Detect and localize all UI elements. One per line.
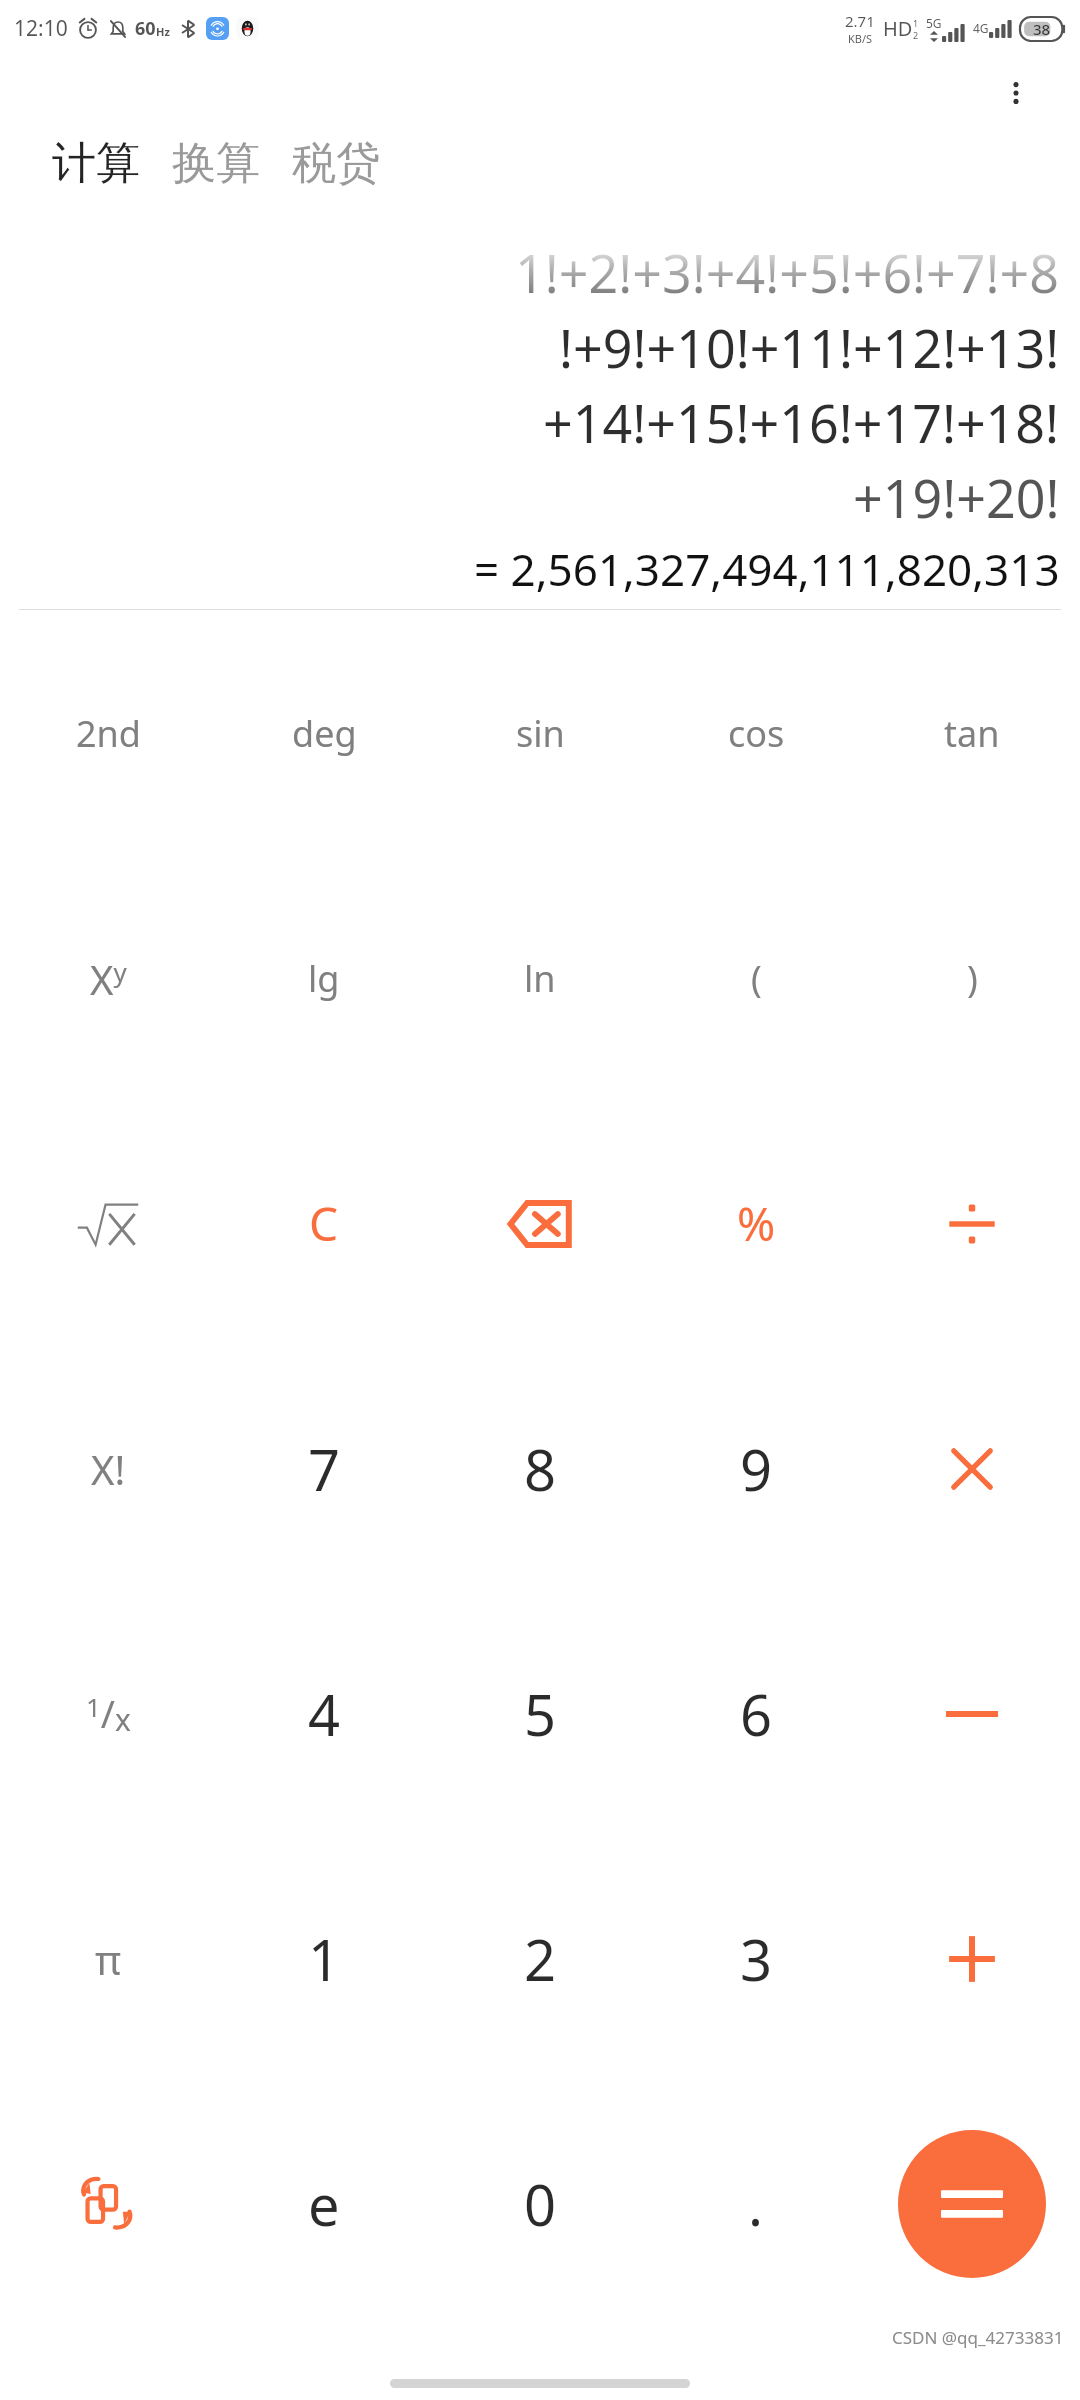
button[interactable]: sin	[432, 610, 648, 856]
staticText: 税贷	[292, 136, 380, 191]
button[interactable]: 2	[432, 1836, 648, 2081]
staticText: 12:10	[14, 14, 68, 43]
button[interactable]: One over x	[0, 1591, 216, 1836]
button[interactable]: 3	[648, 1836, 864, 2081]
staticText: 9	[740, 1431, 773, 1507]
button[interactable]: 4	[216, 1591, 432, 1836]
button[interactable]: 5	[432, 1591, 648, 1836]
staticText: 4	[308, 1676, 341, 1752]
button[interactable]: Square root	[0, 1101, 216, 1346]
button[interactable]: Equals	[898, 2130, 1046, 2278]
staticText: )	[967, 954, 978, 1003]
staticText: 1/x	[86, 1687, 131, 1740]
button[interactable]: Backspace	[432, 1101, 648, 1346]
staticText: Hz	[156, 24, 170, 39]
staticText: 换算	[172, 136, 260, 191]
staticText: 1	[308, 1921, 341, 1997]
staticText: 2	[524, 1921, 557, 1997]
staticText: CSDN @qq_42733831	[892, 2326, 1064, 2349]
staticText: 2nd	[76, 709, 141, 758]
staticText: Xy	[90, 952, 127, 1006]
button[interactable]: Minus	[864, 1591, 1080, 1836]
staticText: deg	[292, 709, 357, 758]
staticText: 3	[740, 1921, 773, 1997]
staticText: lg	[308, 954, 340, 1003]
staticText: tan	[944, 709, 1000, 758]
staticText: 8	[524, 1431, 557, 1507]
button[interactable]: lg	[216, 856, 432, 1101]
staticText: !+9!+10!+11!+12!+13!	[559, 312, 1060, 383]
button[interactable]: More options	[988, 65, 1044, 121]
staticText: 4G	[973, 20, 989, 36]
button[interactable]: Switch layout	[0, 2081, 216, 2326]
staticText: = 2,561,327,494,111,820,313	[474, 539, 1060, 599]
staticText: 0	[524, 2166, 557, 2242]
staticText: X!	[91, 1442, 126, 1496]
button[interactable]: x to the power of y	[0, 856, 216, 1101]
staticText: ln	[524, 954, 556, 1003]
button[interactable]: %	[648, 1101, 864, 1346]
staticText: 计算	[52, 136, 140, 191]
staticText: 2.71	[845, 11, 875, 31]
staticText: 6	[740, 1676, 773, 1752]
staticText: sin	[516, 709, 565, 758]
button[interactable]: 9	[648, 1346, 864, 1591]
button[interactable]: e	[216, 2081, 432, 2326]
button[interactable]: tan	[864, 610, 1080, 856]
button[interactable]: π	[0, 1836, 216, 2081]
button[interactable]: ln	[432, 856, 648, 1101]
staticText: cos	[728, 709, 785, 758]
button[interactable]: 计算	[48, 130, 144, 197]
button[interactable]: cos	[648, 610, 864, 856]
button[interactable]: 换算	[168, 130, 264, 197]
button[interactable]: 0	[432, 2081, 648, 2326]
staticText: +19!+20!	[853, 462, 1060, 533]
staticText: 2	[913, 29, 919, 41]
staticText: C	[309, 1192, 339, 1255]
button[interactable]: Divide	[864, 1101, 1080, 1346]
staticText: 1!+2!+3!+4!+5!+6!+7!+8	[515, 237, 1060, 308]
button[interactable]: X!	[0, 1346, 216, 1591]
staticText: 5G	[926, 15, 942, 31]
button[interactable]: deg	[216, 610, 432, 856]
staticText: +14!+15!+16!+17!+18!	[543, 387, 1060, 458]
button[interactable]: 8	[432, 1346, 648, 1591]
staticText: (	[751, 954, 762, 1003]
staticText: HD	[883, 15, 913, 42]
button[interactable]: 7	[216, 1346, 432, 1591]
button[interactable]: )	[864, 856, 1080, 1101]
staticText: %	[737, 1192, 776, 1255]
staticText: π	[95, 1932, 122, 1986]
button[interactable]: C	[216, 1101, 432, 1346]
button[interactable]: 税贷	[288, 130, 384, 197]
button[interactable]: 6	[648, 1591, 864, 1836]
staticText: 60	[135, 16, 156, 41]
staticText: 5	[524, 1676, 557, 1752]
staticText: e	[308, 2166, 340, 2242]
staticText: .	[748, 2166, 764, 2242]
staticText: 1	[913, 17, 919, 29]
button[interactable]: 2nd	[0, 610, 216, 856]
button[interactable]: Multiply	[864, 1346, 1080, 1591]
staticText: 38	[1033, 19, 1051, 39]
button[interactable]: (	[648, 856, 864, 1101]
staticText: KB/S	[848, 31, 873, 46]
staticText: 7	[308, 1431, 341, 1507]
button[interactable]: .	[648, 2081, 864, 2326]
button[interactable]: Plus	[864, 1836, 1080, 2081]
button[interactable]: 1	[216, 1836, 432, 2081]
